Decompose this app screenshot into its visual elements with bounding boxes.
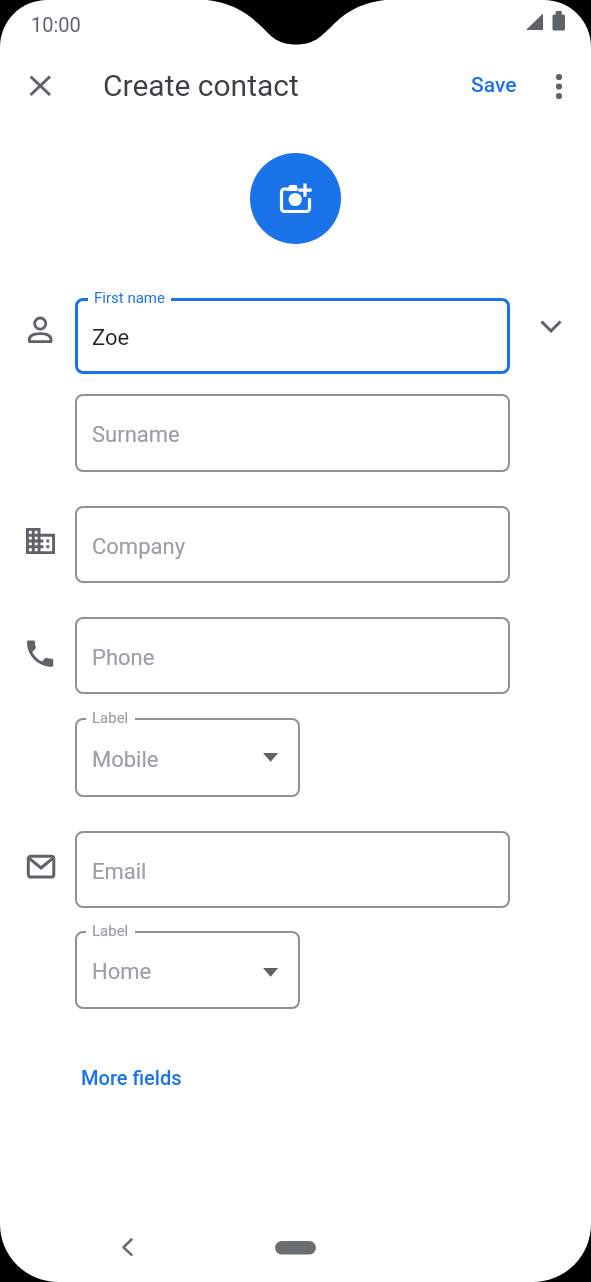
staticText: Phone (92, 645, 155, 671)
staticText: Surname (92, 422, 180, 448)
staticText: More fields (81, 1066, 182, 1089)
button[interactable]: Company (75, 506, 510, 583)
button[interactable]: More fields (68, 1056, 198, 1098)
button[interactable] (541, 68, 577, 104)
button[interactable]: Surname (75, 394, 510, 472)
button[interactable]: Phone (75, 617, 510, 694)
staticText: Save (471, 73, 517, 98)
staticText: Label (92, 709, 129, 727)
button[interactable]: Home (75, 931, 300, 1009)
staticText: Create contact (103, 68, 299, 103)
staticText: First name (94, 289, 165, 307)
button[interactable] (250, 153, 341, 244)
staticText: Label (92, 922, 129, 940)
button[interactable]: Mobile (75, 718, 300, 797)
staticText: Zoe (92, 325, 130, 351)
button[interactable]: Zoe (75, 298, 510, 374)
staticText: Company (92, 534, 186, 560)
button[interactable]: Email (75, 831, 510, 908)
button[interactable] (103, 1223, 151, 1271)
staticText: Email (92, 859, 147, 885)
staticText: 10:00 (31, 13, 81, 36)
staticText: Home (92, 959, 152, 985)
staticText: Mobile (92, 747, 159, 773)
button[interactable] (22, 68, 58, 104)
button[interactable]: Save (461, 66, 526, 104)
